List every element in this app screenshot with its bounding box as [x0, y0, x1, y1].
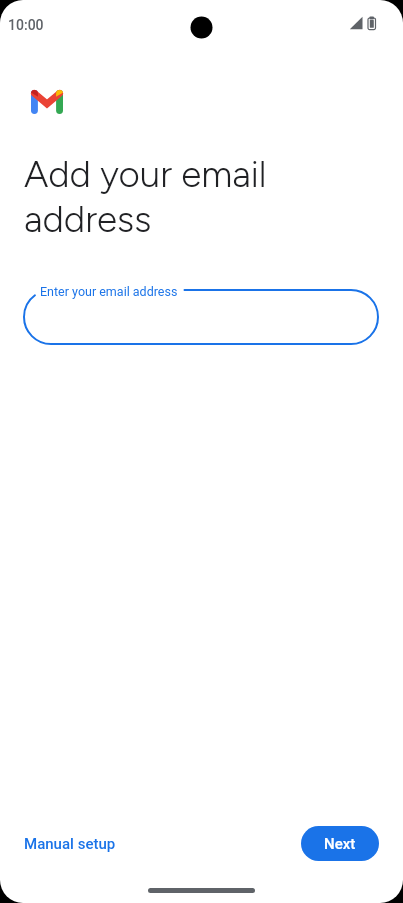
staticText: 10:00	[8, 17, 44, 33]
other: Gmail	[31, 90, 63, 114]
button[interactable]: Enter your email address	[23, 289, 379, 345]
button[interactable]: Next	[301, 826, 379, 861]
staticText: Enter your email address	[40, 284, 178, 299]
staticText: Manual setup	[24, 835, 116, 853]
staticText: Add your email address	[24, 152, 267, 241]
button[interactable]: Manual setup	[12, 826, 128, 862]
staticText: Next	[324, 835, 356, 853]
